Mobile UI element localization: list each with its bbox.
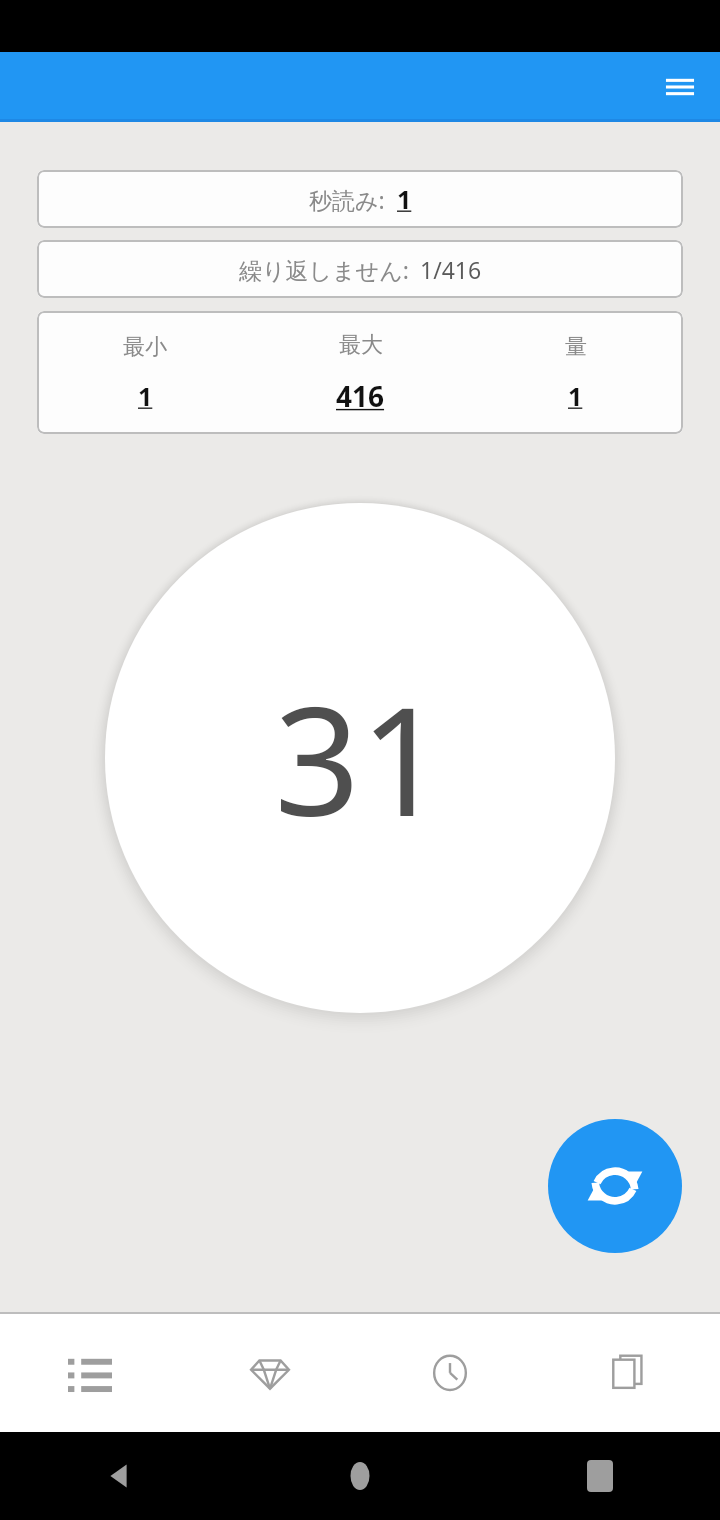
button[interactable]: 繰り返しません: — [37, 240, 683, 298]
button[interactable]: Dice — [234, 1336, 306, 1408]
button[interactable]: Cards — [594, 1336, 666, 1408]
button[interactable]: Reroll — [548, 1119, 682, 1253]
button[interactable]: Recents — [572, 1448, 628, 1504]
staticText: 416 — [336, 377, 385, 415]
staticText: 31 — [274, 656, 446, 860]
button[interactable]: 最小 — [37, 311, 683, 434]
button[interactable]: Home — [332, 1448, 388, 1504]
staticText: 最大 — [339, 331, 383, 359]
staticText: 1 — [138, 379, 153, 413]
button[interactable]: Back — [92, 1448, 148, 1504]
staticText: 最小 — [123, 333, 167, 361]
staticText: 量 — [565, 333, 587, 361]
button[interactable]: 最大 — [253, 331, 468, 415]
button[interactable]: List — [54, 1336, 126, 1408]
button[interactable]: 秒読み: — [37, 170, 683, 228]
staticText: 1/416 — [420, 254, 482, 285]
staticText: 1 — [397, 182, 412, 216]
button[interactable]: History — [414, 1336, 486, 1408]
button[interactable]: Menu — [652, 59, 708, 115]
button[interactable]: 量 — [468, 333, 683, 413]
staticText: 繰り返しません: — [239, 254, 409, 285]
staticText: 1 — [568, 379, 583, 413]
button[interactable]: Roll result 31 — [95, 493, 625, 1023]
button[interactable]: 最小 — [37, 333, 253, 413]
staticText: 秒読み: — [309, 184, 385, 215]
